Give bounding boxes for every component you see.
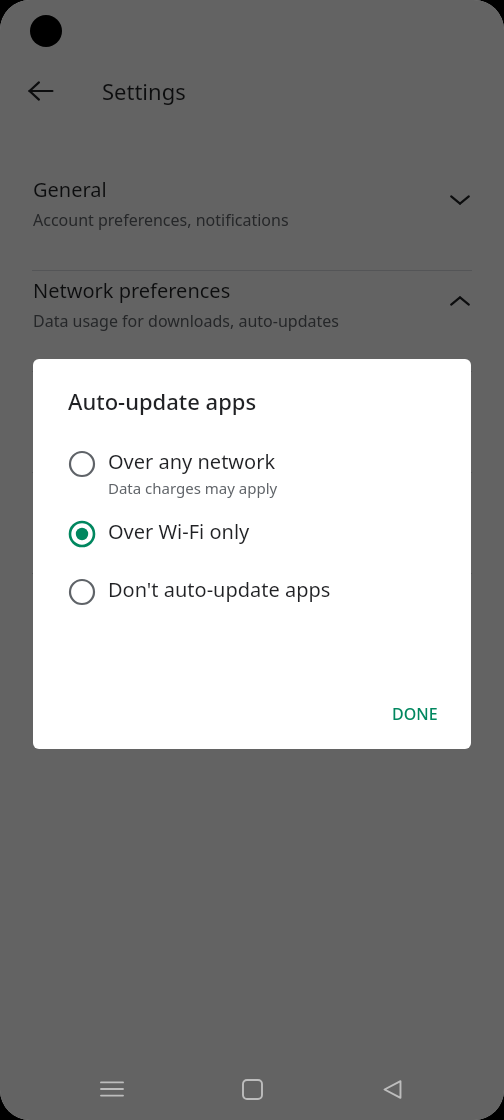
button[interactable]: Over any network [33,444,471,502]
button[interactable]: Back [17,67,65,115]
staticText: Account preferences, notifications [33,209,289,231]
button[interactable]: Over Wi-Fi only [33,514,471,550]
staticText: About [33,580,90,607]
button[interactable]: Recent apps [84,1061,140,1117]
staticText: DONE [392,703,438,725]
staticText: Auto-update apps [68,386,257,416]
staticText: Fingerprint, purchase authentication [33,411,309,433]
button[interactable]: Expand [436,378,484,426]
staticText: Over any network [108,448,276,475]
button[interactable]: General [0,170,504,270]
staticText: Data charges may apply [108,478,278,498]
button[interactable]: Expand [436,580,484,628]
button[interactable]: Back [364,1061,420,1117]
button[interactable]: Authentication [0,372,504,472]
button[interactable]: DONE [376,693,454,735]
staticText: Over Wi-Fi only [108,518,250,545]
button[interactable]: Expand [436,479,484,527]
staticText: Data usage for downloads, auto-updates [33,310,339,332]
button[interactable]: Collapse [436,277,484,325]
staticText: Network preferences [33,277,231,304]
staticText: Authentication [33,378,172,405]
staticText: Parental control, parent guide [33,512,259,534]
button[interactable]: Family [0,473,504,573]
button[interactable]: Network preferences [0,271,504,371]
button[interactable]: About [0,574,504,674]
button[interactable]: Expand [436,176,484,224]
staticText: Settings [102,76,186,106]
button[interactable]: Don't auto-update apps [33,572,471,608]
staticText: General [33,176,107,203]
button[interactable]: Home [224,1061,280,1117]
staticText: Don't auto-update apps [108,576,331,603]
